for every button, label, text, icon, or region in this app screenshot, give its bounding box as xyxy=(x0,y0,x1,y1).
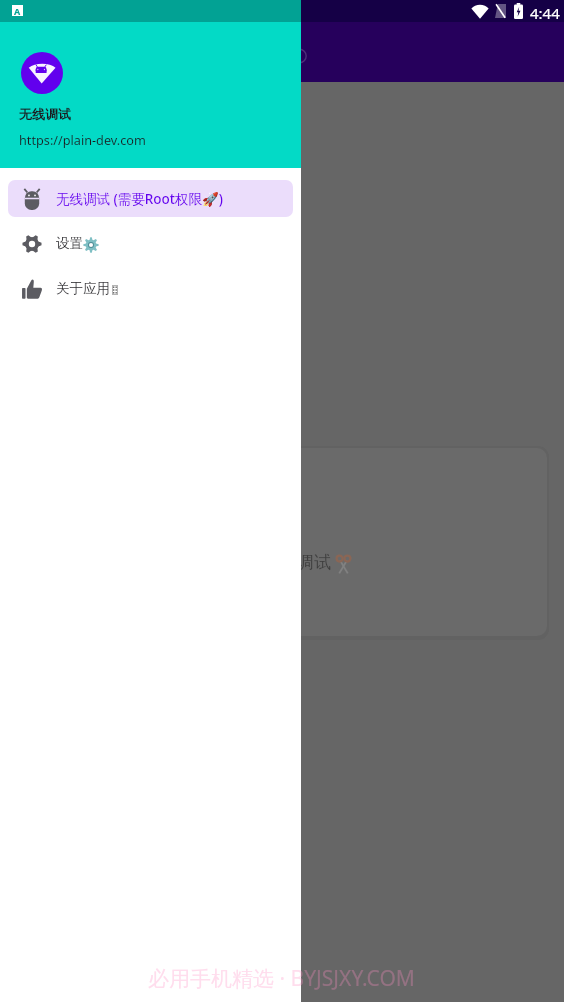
staticText: 关于应用 xyxy=(56,280,110,297)
staticText: 设置 xyxy=(56,235,83,252)
staticText: 4:44 xyxy=(530,3,560,23)
staticText: 无线调试 (需要Root权限🚀) xyxy=(56,190,223,208)
button[interactable]: Open navigation menu xyxy=(277,32,321,76)
staticText: 开启无线调试 xyxy=(229,552,331,573)
staticText: A xyxy=(14,5,21,16)
staticText: 无线调试 xyxy=(19,106,71,122)
button[interactable]: 设置 xyxy=(8,225,293,262)
button[interactable]: 无线调试 (需要Root权限🚀) xyxy=(8,180,293,217)
staticText: 必用手机精选 · BYJSJXY.COM xyxy=(148,964,415,993)
button[interactable]: 开启无线调试 xyxy=(213,545,368,581)
button[interactable]: 关于应用 xyxy=(8,270,293,307)
staticText: https://plain-dev.com xyxy=(19,131,146,148)
